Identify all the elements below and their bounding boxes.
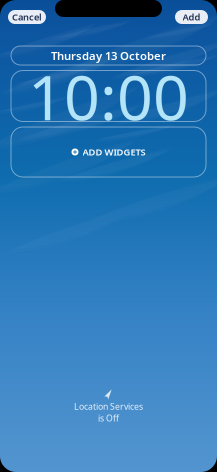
staticText: Cancel — [12, 11, 42, 23]
staticText: Thursday 13 October — [51, 48, 166, 63]
staticText: 10:00 — [28, 53, 189, 139]
staticText: is Off — [98, 412, 119, 424]
button[interactable]: Thursday 13 October — [11, 46, 206, 65]
button[interactable]: 10:00 — [11, 70, 206, 121]
staticText: Add — [182, 11, 200, 23]
staticText: Location Services — [74, 400, 143, 412]
button[interactable]: Add — [175, 10, 208, 24]
button[interactable]: ADD WIDGETS — [11, 127, 206, 177]
button[interactable]: Cancel — [8, 10, 46, 24]
staticText: ADD WIDGETS — [82, 146, 145, 158]
